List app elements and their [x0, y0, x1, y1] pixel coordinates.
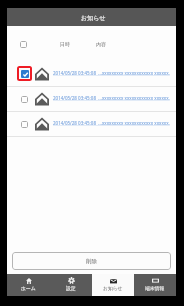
- staticText: お知らせ: [81, 14, 106, 22]
- button[interactable]: 2014/05/28 03:45:08 ...xxxxxxxxx xxxxxxx…: [7, 87, 176, 112]
- staticText: 2014/05/28 03:45:08 ...xxxxxxxxx xxxxxxx…: [53, 95, 170, 101]
- button[interactable]: お知らせ: [92, 274, 134, 296]
- staticText: 削除: [86, 258, 97, 265]
- staticText: ホーム: [21, 285, 36, 291]
- staticText: 内容: [96, 41, 106, 47]
- button[interactable]: 端末情報: [134, 274, 176, 296]
- staticText: 端末情報: [145, 285, 165, 291]
- button[interactable]: 2014/05/28 03:45:08 ...xxxxxxxxx xxxxxxx…: [7, 112, 176, 137]
- button[interactable]: Select all: [20, 41, 27, 48]
- button[interactable]: 2014/05/28 03:45:08 ...xxxxxxxxx xxxxxxx…: [7, 62, 176, 87]
- button[interactable]: ホーム: [7, 274, 50, 296]
- staticText: 日時: [60, 41, 70, 47]
- staticText: 2014/05/28 03:45:08 ...xxxxxxxxx xxxxxxx…: [53, 120, 170, 126]
- button[interactable]: 削除: [12, 252, 171, 270]
- staticText: お知らせ: [103, 285, 123, 291]
- button[interactable]: 設定: [50, 274, 92, 296]
- staticText: 2014/05/28 03:45:08 ...xxxxxxxxx xxxxxxx…: [53, 70, 170, 76]
- staticText: 設定: [66, 285, 76, 291]
